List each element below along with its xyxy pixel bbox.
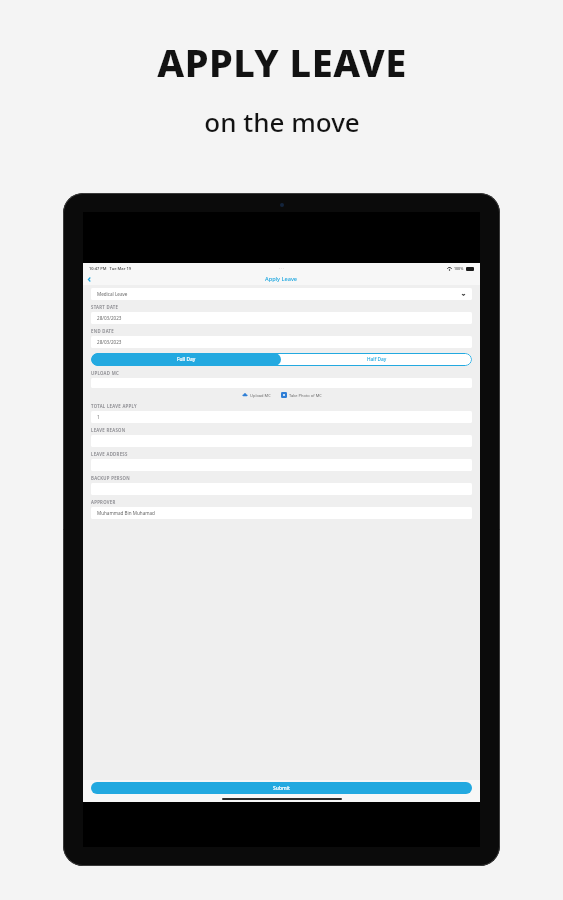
staticText: on the move — [204, 104, 360, 139]
staticText: 10:47 PM Tue Mar 19 — [89, 266, 132, 271]
button[interactable]: Back — [83, 273, 95, 285]
staticText: 28/03/2023 — [97, 315, 122, 321]
staticText: UPLOAD MC — [91, 370, 119, 376]
staticText: Half Day — [367, 356, 387, 363]
staticText: Full Day — [177, 356, 196, 363]
button[interactable]: 28/03/2023 — [91, 336, 472, 348]
button[interactable]: Upload MC — [240, 391, 273, 399]
staticText: 1 — [97, 414, 100, 420]
button[interactable]: Submit — [91, 782, 472, 794]
staticText: LEAVE ADDRESS — [91, 451, 128, 457]
staticText: START DATE — [91, 304, 119, 310]
staticText: APPLY LEAVE — [157, 36, 407, 88]
staticText: Upload MC — [250, 393, 271, 398]
staticText: Submit — [273, 785, 290, 792]
button[interactable]: 28/03/2023 — [91, 312, 472, 324]
staticText: END DATE — [91, 328, 114, 334]
staticText: TOTAL LEAVE APPLY — [91, 403, 137, 409]
staticText: · · · — [279, 266, 285, 271]
staticText: Muhammad Bin Muhamad — [97, 510, 155, 516]
staticText: Apply Leave — [265, 275, 298, 283]
staticText: Medical Leave — [97, 291, 128, 297]
staticText: BACKUP PERSON — [91, 475, 130, 481]
button[interactable]: Medical Leave — [91, 288, 472, 300]
button[interactable]: Take Photo of MC — [279, 391, 324, 399]
staticText: 100% — [454, 266, 464, 271]
button[interactable]: Muhammad Bin Muhamad — [91, 507, 472, 519]
staticText: APPROVER — [91, 499, 116, 505]
button[interactable]: Full Day — [91, 353, 281, 366]
staticText: LEAVE REASON — [91, 427, 126, 433]
button[interactable]: Half Day — [281, 353, 472, 366]
staticText: 28/03/2023 — [97, 339, 122, 345]
staticText: Take Photo of MC — [289, 393, 322, 398]
